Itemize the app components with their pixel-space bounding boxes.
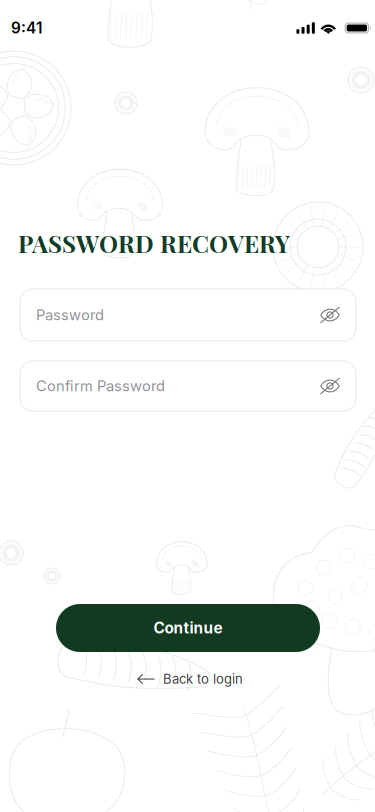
staticText: 9:41 — [11, 19, 42, 37]
button[interactable]: Password — [20, 289, 356, 341]
button[interactable]: Continue — [56, 604, 320, 652]
button[interactable]: Back to login — [129, 665, 251, 693]
staticText: Continue — [153, 619, 222, 637]
staticText: Confirm Password — [36, 377, 165, 395]
button[interactable]: Confirm Password — [20, 361, 356, 411]
staticText: Back to login — [163, 671, 243, 687]
staticText: Password — [36, 306, 104, 324]
staticText: PASSWORD RECOVERY — [18, 227, 290, 259]
